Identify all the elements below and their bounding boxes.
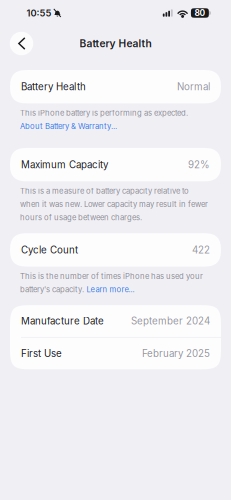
button[interactable]: Maximum Capacity bbox=[10, 148, 221, 181]
staticText: Manufacture Date bbox=[21, 315, 104, 327]
staticText: Normal bbox=[177, 81, 210, 93]
button[interactable]: About Battery & Warranty... bbox=[20, 122, 117, 131]
staticText: Maximum Capacity bbox=[21, 159, 108, 171]
staticText: battery's capacity. bbox=[20, 285, 84, 294]
staticText: Battery Health bbox=[79, 37, 151, 50]
staticText: when it was new. Lower capacity may resu… bbox=[20, 200, 208, 209]
staticText: First Use bbox=[21, 348, 62, 359]
staticText: Battery Health bbox=[21, 81, 86, 93]
staticText: September 2024 bbox=[131, 315, 210, 327]
staticText: This is the number of times iPhone has u… bbox=[20, 272, 203, 281]
staticText: 10:55 bbox=[26, 7, 51, 19]
button[interactable]: Manufacture Date bbox=[10, 305, 221, 337]
staticText: 92% bbox=[188, 159, 210, 171]
staticText: This is a measure of battery capacity re… bbox=[20, 186, 189, 196]
staticText: hours of usage between charges. bbox=[20, 213, 142, 222]
staticText: This iPhone battery is performing as exp… bbox=[20, 108, 188, 118]
button[interactable]: First Use bbox=[10, 337, 221, 369]
button[interactable]: Cycle Count bbox=[10, 233, 221, 267]
staticText: Learn more... bbox=[86, 285, 134, 294]
button[interactable]: Battery Health bbox=[10, 70, 221, 103]
staticText: 80 bbox=[194, 8, 205, 18]
staticText: February 2025 bbox=[142, 348, 210, 359]
staticText: Cycle Count bbox=[21, 244, 78, 256]
button[interactable]: Learn more... bbox=[86, 285, 134, 294]
button[interactable]: Back bbox=[8, 30, 35, 57]
staticText: 422 bbox=[192, 244, 210, 256]
staticText: About Battery & Warranty... bbox=[20, 122, 117, 131]
